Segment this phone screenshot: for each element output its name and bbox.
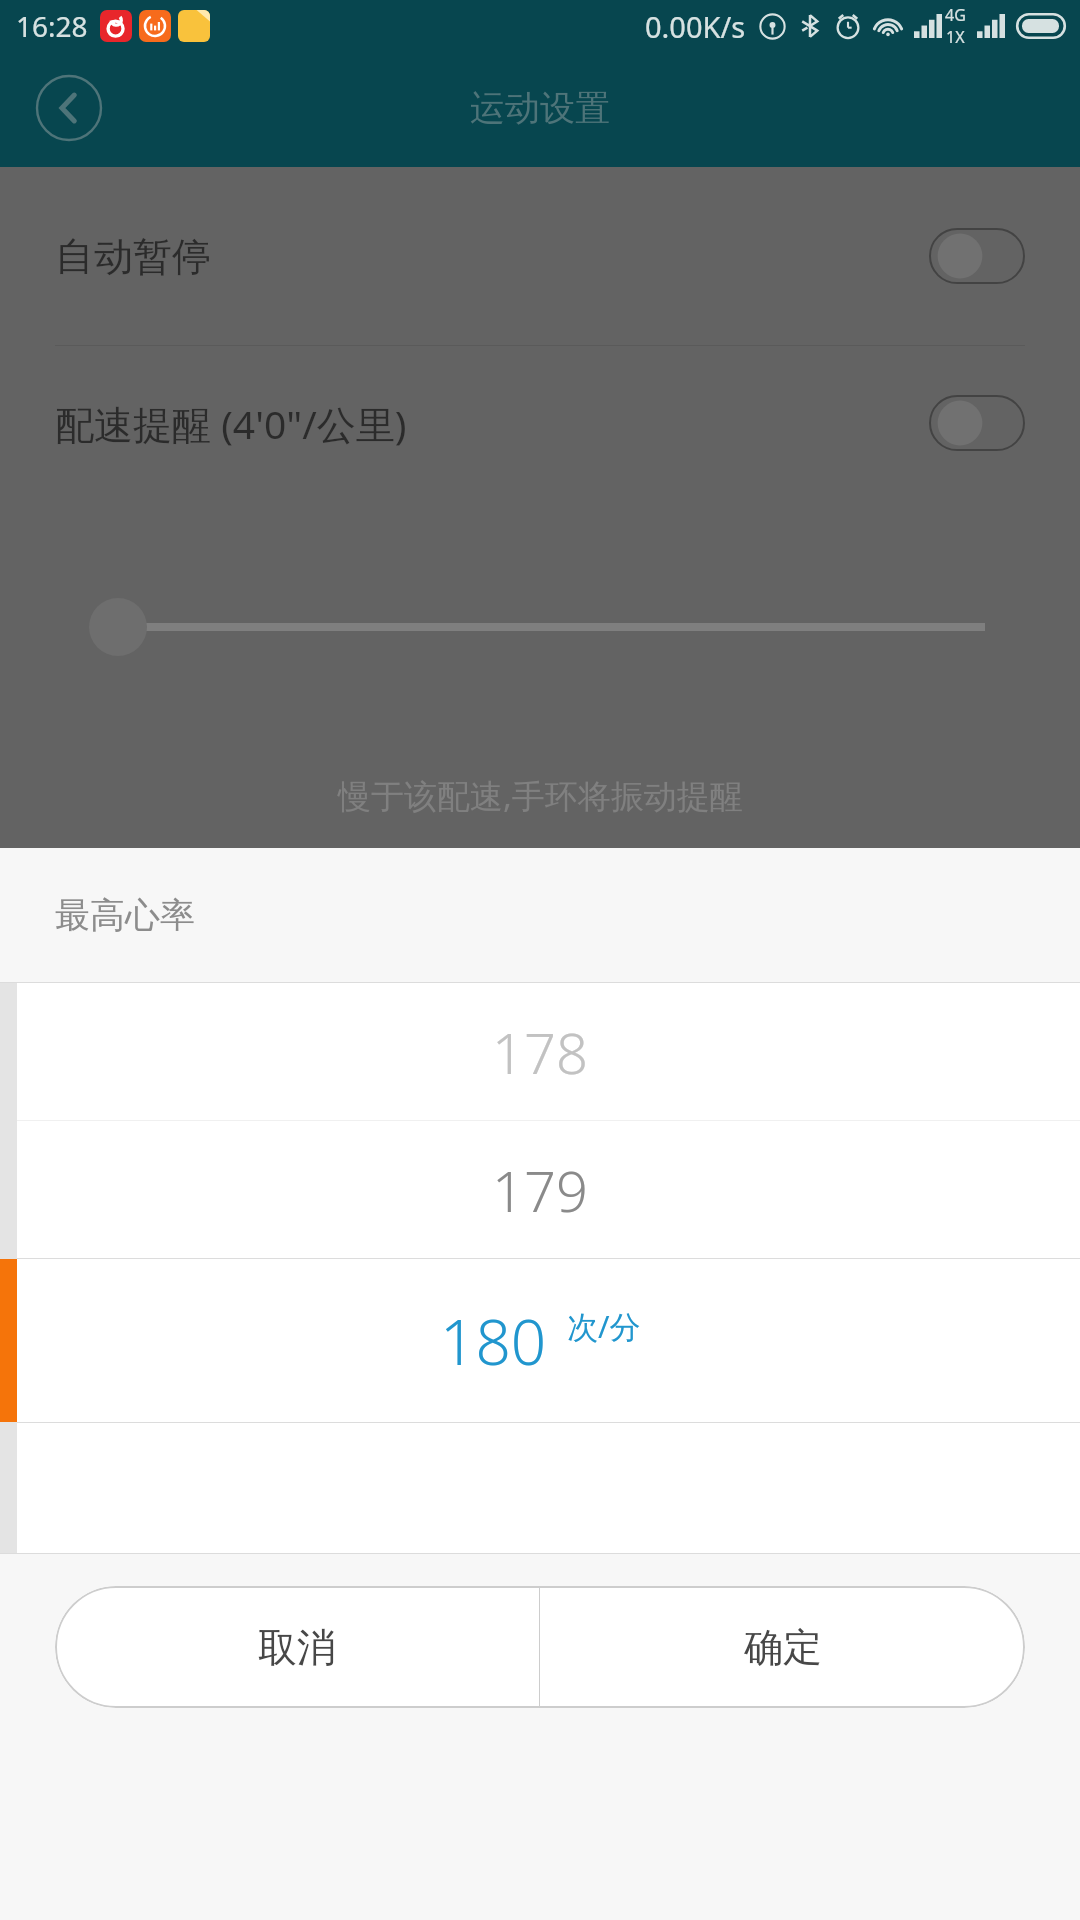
button[interactable]: 配速提醒 (4'0"/公里) — [0, 345, 1080, 501]
button[interactable]: 自动暂停 — [0, 167, 1080, 345]
staticText: 慢于该配速,手环将振动提醒 — [338, 773, 743, 818]
button[interactable]: Toggle — [929, 228, 1025, 284]
staticText: 180 — [440, 1299, 547, 1383]
staticText: 179 — [492, 1152, 588, 1228]
button[interactable]: 178 — [0, 983, 1080, 1120]
staticText: 配速提醒 (4'0"/公里) — [55, 397, 407, 450]
staticText: 运动设置 — [470, 86, 610, 130]
staticText: 178 — [492, 1014, 588, 1090]
button[interactable]: 取消 — [55, 1586, 539, 1708]
staticText: 16:28 — [16, 7, 88, 45]
staticText: 0.00K/s — [645, 7, 746, 46]
button[interactable]: 确定 — [540, 1586, 1025, 1708]
staticText: 确定 — [744, 1623, 822, 1672]
staticText: 次/分 — [567, 1305, 641, 1347]
staticText: 4G — [945, 4, 966, 26]
button[interactable]: 180 — [0, 1259, 1080, 1422]
staticText: 1X — [946, 26, 965, 48]
staticText: 最高心率 — [55, 893, 195, 937]
button[interactable]: Toggle — [929, 395, 1025, 451]
staticText: 自动暂停 — [55, 232, 211, 281]
button[interactable]: 179 — [0, 1121, 1080, 1258]
button[interactable]: Back — [35, 74, 103, 142]
staticText: 取消 — [258, 1623, 336, 1672]
